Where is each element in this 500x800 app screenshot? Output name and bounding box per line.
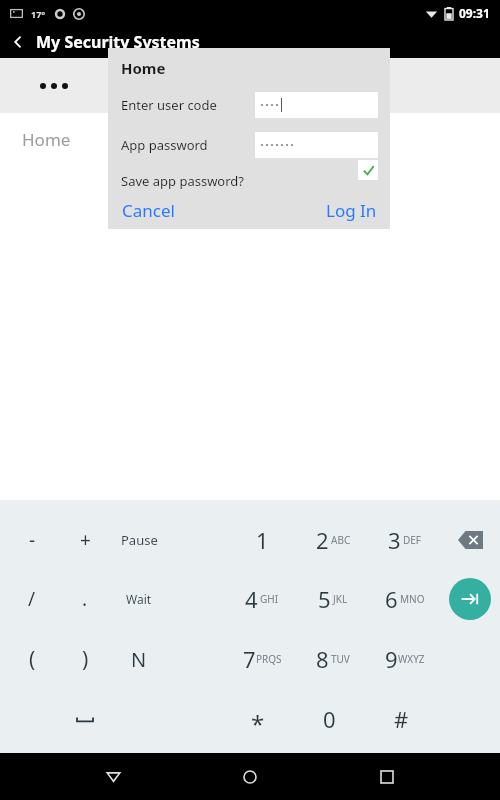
staticText: 9 <box>385 644 398 674</box>
staticText: WXYZ <box>398 652 425 666</box>
staticText: 3 <box>388 525 401 555</box>
staticText: Home <box>121 58 166 78</box>
staticText: 6 <box>385 584 398 614</box>
button[interactable]: Back <box>0 26 36 58</box>
staticText: 1 <box>256 525 269 555</box>
staticText: ABC <box>331 533 351 547</box>
staticText: N <box>131 646 147 673</box>
button[interactable]: ( <box>6 633 58 685</box>
staticText: TUV <box>331 652 350 666</box>
button[interactable] <box>255 92 378 118</box>
staticText: MNO <box>400 592 425 606</box>
button[interactable]: Recent apps <box>363 753 411 800</box>
staticText: 0 <box>323 704 336 734</box>
button[interactable]: 4 <box>229 573 295 625</box>
staticText: Wait <box>126 591 152 607</box>
staticText: 09:31 <box>459 5 490 21</box>
button[interactable]: Back <box>89 753 137 800</box>
button[interactable] <box>255 132 378 158</box>
button[interactable]: 1 <box>229 514 295 566</box>
staticText: # <box>394 704 409 734</box>
staticText: 5 <box>318 584 331 614</box>
button[interactable]: + <box>59 514 111 566</box>
button[interactable]: Backspace <box>444 514 496 566</box>
staticText: JKL <box>333 592 348 606</box>
staticText: 4 <box>245 584 258 614</box>
staticText: ) <box>82 645 89 674</box>
staticText: Home <box>22 128 71 151</box>
button[interactable]: 8 <box>300 633 366 685</box>
staticText: . <box>82 586 88 612</box>
button[interactable]: # <box>372 693 438 745</box>
button[interactable]: 2 <box>300 514 366 566</box>
staticText: Cancel <box>122 199 175 222</box>
button[interactable]: Cancel <box>121 196 176 225</box>
button[interactable]: Space <box>59 693 111 745</box>
button[interactable]: More options <box>0 58 108 113</box>
staticText: 7 <box>243 644 256 674</box>
button[interactable]: 0 <box>300 693 366 745</box>
button[interactable]: Save app password <box>358 160 378 180</box>
staticText: Enter user code <box>121 96 217 114</box>
staticText: App password <box>121 136 208 154</box>
staticText: + <box>80 527 91 553</box>
button[interactable]: 3 <box>372 514 438 566</box>
staticText: - <box>29 527 36 553</box>
button[interactable]: Pause <box>113 514 165 566</box>
button[interactable]: 6 <box>372 573 438 625</box>
staticText: PRQS <box>256 652 282 666</box>
button[interactable]: Wait <box>113 573 165 625</box>
button[interactable]: Home <box>226 753 274 800</box>
staticText: DEF <box>403 533 422 547</box>
button[interactable]: Next field <box>449 578 491 620</box>
staticText: 8 <box>316 644 329 674</box>
button[interactable]: N <box>113 633 165 685</box>
staticText: Save app password? <box>121 172 244 190</box>
button[interactable]: / <box>6 573 58 625</box>
button[interactable]: * <box>229 693 295 745</box>
staticText: Log In <box>326 199 377 222</box>
staticText: ( <box>29 645 36 674</box>
staticText: 2 <box>316 525 329 555</box>
button[interactable]: ) <box>59 633 111 685</box>
button[interactable]: - <box>6 514 58 566</box>
staticText: 17° <box>31 8 46 20</box>
button[interactable]: . <box>59 573 111 625</box>
staticText: My Security Systems <box>36 31 200 53</box>
button[interactable]: Log In <box>325 196 378 225</box>
staticText: / <box>28 586 36 612</box>
staticText: * <box>251 707 265 740</box>
button[interactable]: 7 <box>229 633 295 685</box>
button[interactable]: 5 <box>300 573 366 625</box>
staticText: Pause <box>121 531 158 549</box>
button[interactable]: 9 <box>372 633 438 685</box>
staticText: GHI <box>260 592 279 606</box>
